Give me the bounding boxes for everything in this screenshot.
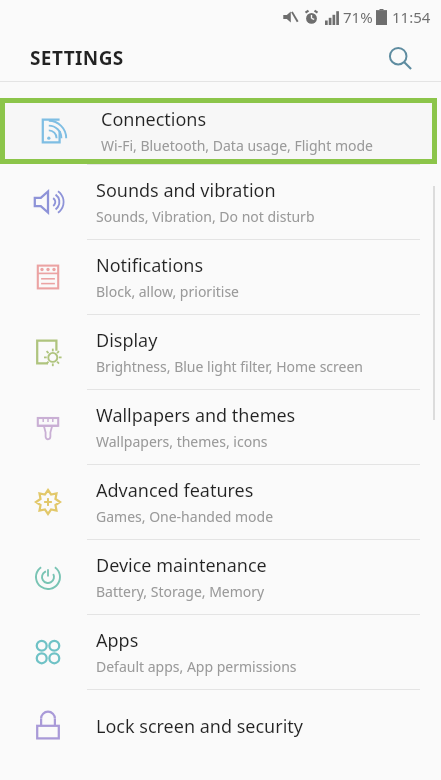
button[interactable]: Display bbox=[0, 314, 441, 389]
button[interactable]: Device maintenance bbox=[0, 539, 441, 614]
staticText: 71% bbox=[343, 7, 373, 27]
staticText: Sounds and vibration bbox=[96, 178, 276, 203]
staticText: 11:54 bbox=[392, 7, 431, 27]
staticText: Brightness, Blue light filter, Home scre… bbox=[96, 357, 364, 376]
staticText: Wi-Fi, Bluetooth, Data usage, Flight mod… bbox=[101, 136, 374, 155]
button[interactable]: Advanced features bbox=[0, 464, 441, 539]
staticText: Notifications bbox=[96, 253, 204, 278]
button[interactable]: Wallpapers and themes bbox=[0, 389, 441, 464]
staticText: SETTINGS bbox=[30, 45, 124, 71]
staticText: Display bbox=[96, 328, 158, 353]
button[interactable]: Lock screen and security bbox=[0, 689, 441, 764]
button[interactable]: Notifications bbox=[0, 239, 441, 314]
staticText: Lock screen and security bbox=[96, 714, 303, 739]
staticText: Wallpapers and themes bbox=[96, 403, 296, 428]
staticText: Default apps, App permissions bbox=[96, 657, 297, 676]
staticText: Games, One-handed mode bbox=[96, 507, 274, 526]
staticText: Sounds, Vibration, Do not disturb bbox=[96, 207, 315, 226]
staticText: Device maintenance bbox=[96, 553, 267, 578]
staticText: Connections bbox=[101, 107, 207, 132]
staticText: Block, allow, prioritise bbox=[96, 282, 240, 301]
button[interactable]: Apps bbox=[0, 614, 441, 689]
staticText: Apps bbox=[96, 628, 139, 653]
staticText: Battery, Storage, Memory bbox=[96, 582, 265, 601]
staticText: Wallpapers, themes, icons bbox=[96, 432, 268, 451]
button[interactable]: Search bbox=[379, 37, 421, 79]
staticText: Advanced features bbox=[96, 478, 254, 503]
button[interactable]: Connections bbox=[5, 103, 432, 159]
button[interactable]: Sounds and vibration bbox=[0, 164, 441, 239]
